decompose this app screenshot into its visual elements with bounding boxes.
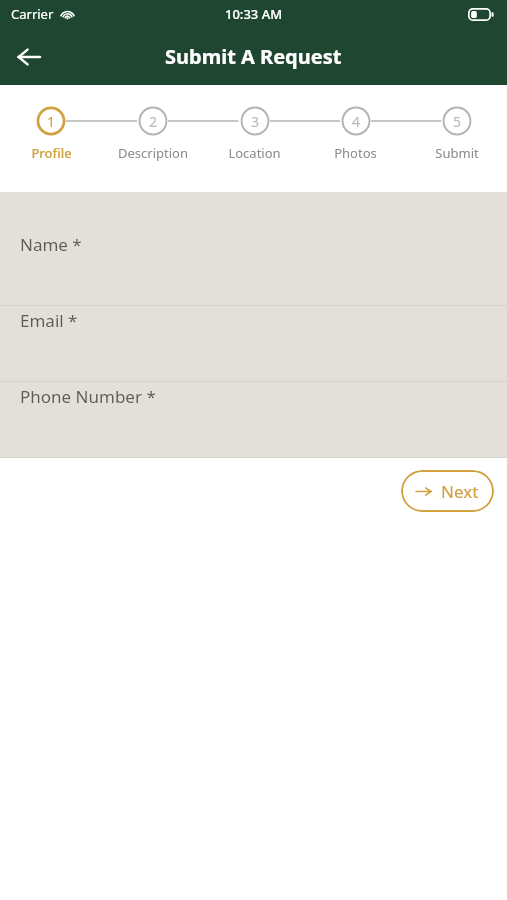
staticText: Photos: [334, 144, 377, 162]
staticText: 2: [149, 112, 158, 131]
staticText: Location: [228, 144, 281, 162]
staticText: Name *: [20, 233, 82, 256]
staticText: Carrier: [11, 5, 54, 23]
staticText: Phone Number *: [20, 385, 156, 408]
button[interactable]: Email *: [0, 306, 507, 382]
staticText: 10:33 AM: [225, 5, 283, 23]
staticText: Email *: [20, 309, 78, 332]
staticText: Submit: [435, 144, 479, 162]
staticText: Description: [118, 144, 188, 162]
staticText: 5: [453, 112, 462, 131]
button[interactable]: Name *: [0, 230, 507, 306]
button[interactable]: Phone Number *: [0, 382, 507, 458]
staticText: 3: [251, 112, 260, 131]
button[interactable]: Back: [6, 34, 52, 80]
button[interactable]: 5: [406, 85, 507, 162]
staticText: 1: [47, 112, 56, 131]
button[interactable]: 2: [102, 85, 204, 162]
button[interactable]: 1: [0, 85, 102, 162]
staticText: Next: [441, 480, 479, 503]
button[interactable]: 4: [305, 85, 406, 162]
button[interactable]: 3: [204, 85, 305, 162]
staticText: Profile: [31, 144, 72, 162]
button[interactable]: Next: [401, 470, 494, 512]
staticText: 4: [352, 112, 361, 131]
staticText: Submit A Request: [165, 43, 342, 70]
